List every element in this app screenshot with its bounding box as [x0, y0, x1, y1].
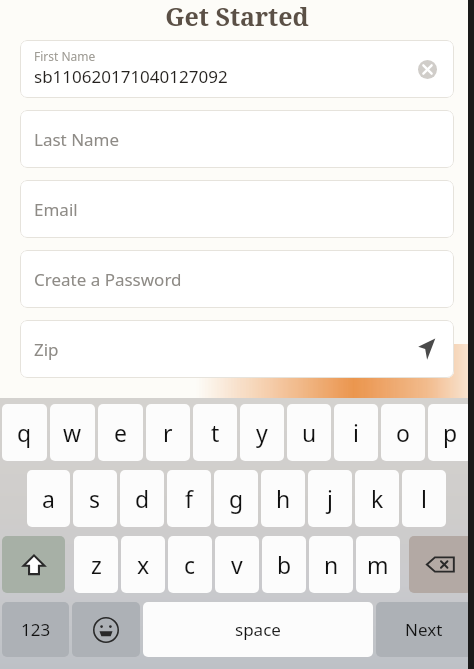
button[interactable]: r	[146, 404, 190, 461]
staticText: g	[229, 483, 244, 514]
button[interactable]: Use current location	[408, 333, 440, 365]
staticText: x	[137, 549, 150, 580]
staticText: b	[277, 549, 292, 580]
button[interactable]: 123	[2, 602, 69, 657]
button[interactable]: Last Name	[20, 110, 454, 168]
button[interactable]: Next	[376, 602, 472, 657]
button[interactable]: d	[120, 470, 164, 527]
button[interactable]: Zip	[20, 320, 454, 378]
button[interactable]: x	[121, 536, 165, 593]
staticText: space	[235, 618, 281, 641]
button[interactable]: First Name	[20, 40, 454, 98]
button[interactable]: z	[74, 536, 118, 593]
staticText: 123	[21, 618, 51, 641]
button[interactable]: Email	[20, 180, 454, 238]
button[interactable]: Emoji	[72, 602, 140, 657]
staticText: j	[327, 483, 333, 514]
button[interactable]: m	[356, 536, 400, 593]
staticText: i	[353, 417, 359, 448]
staticText: First Name	[34, 48, 96, 64]
button[interactable]: y	[240, 404, 284, 461]
staticText: a	[42, 483, 55, 514]
button[interactable]: c	[168, 536, 212, 593]
staticText: Last Name	[34, 128, 120, 151]
staticText: z	[91, 549, 102, 580]
button[interactable]: g	[214, 470, 258, 527]
staticText: q	[17, 417, 32, 448]
button[interactable]: v	[215, 536, 259, 593]
button[interactable]: n	[309, 536, 353, 593]
button[interactable]: l	[402, 470, 446, 527]
staticText: Email	[34, 198, 78, 221]
button[interactable]: b	[262, 536, 306, 593]
button[interactable]: h	[261, 470, 305, 527]
staticText: d	[135, 483, 150, 514]
button[interactable]: w	[50, 404, 95, 461]
button[interactable]: space	[143, 602, 373, 657]
button[interactable]: e	[98, 404, 143, 461]
button[interactable]: q	[2, 404, 47, 461]
button[interactable]: t	[193, 404, 237, 461]
staticText: Create a Password	[34, 268, 182, 291]
staticText: c	[184, 549, 196, 580]
staticText: k	[371, 483, 384, 514]
staticText: p	[443, 417, 458, 448]
button[interactable]: Backspace	[409, 536, 472, 593]
staticText: r	[163, 417, 173, 448]
button[interactable]: Clear text	[412, 54, 442, 84]
staticText: e	[114, 417, 127, 448]
staticText: n	[324, 549, 339, 580]
staticText: Zip	[34, 338, 59, 361]
staticText: s	[89, 483, 101, 514]
button[interactable]: f	[167, 470, 211, 527]
button[interactable]: Create a Password	[20, 250, 454, 308]
staticText: v	[231, 549, 243, 580]
staticText: l	[421, 483, 427, 514]
button[interactable]: j	[308, 470, 352, 527]
staticText: u	[302, 417, 317, 448]
staticText: h	[276, 483, 291, 514]
button[interactable]: a	[27, 470, 70, 527]
staticText: y	[256, 417, 268, 448]
staticText: m	[367, 549, 389, 580]
staticText: Get Started	[165, 0, 309, 33]
button[interactable]: s	[73, 470, 117, 527]
button[interactable]: Shift	[2, 536, 65, 593]
staticText: o	[396, 417, 410, 448]
button[interactable]: i	[334, 404, 378, 461]
staticText: f	[185, 483, 193, 514]
staticText: Next	[405, 618, 443, 641]
staticText: w	[63, 417, 82, 448]
button[interactable]: o	[381, 404, 425, 461]
button[interactable]: k	[355, 470, 399, 527]
staticText: t	[211, 417, 220, 448]
button[interactable]: p	[428, 404, 472, 461]
staticText: sb110620171040127092	[34, 65, 228, 88]
button[interactable]: u	[287, 404, 331, 461]
